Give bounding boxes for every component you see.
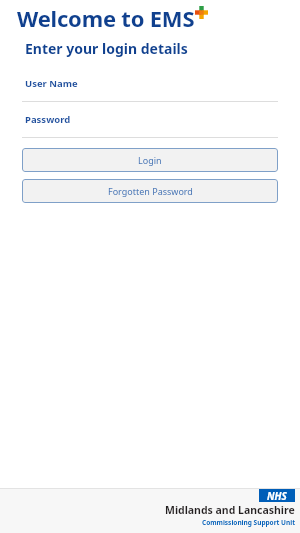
staticText: Welcome to EMS — [17, 3, 195, 33]
staticText: Midlands and Lancashire — [165, 503, 295, 517]
staticText: User Name — [25, 77, 78, 90]
staticText: Password — [25, 113, 71, 126]
staticText: NHS — [267, 489, 287, 502]
staticText: Enter your login details — [25, 39, 188, 58]
staticText: Forgotten Password — [108, 185, 193, 197]
staticText: Commissioning Support Unit — [202, 518, 295, 527]
staticText: Login — [138, 154, 162, 166]
button[interactable]: Forgotten Password — [22, 179, 278, 203]
button[interactable]: Login — [22, 148, 278, 172]
